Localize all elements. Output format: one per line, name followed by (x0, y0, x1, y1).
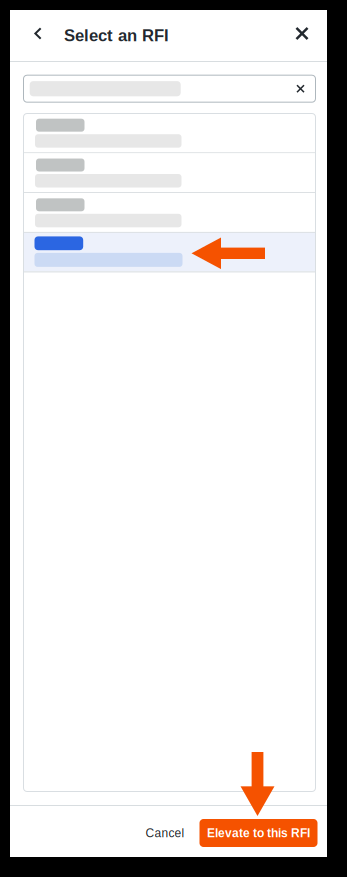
button[interactable] (23, 233, 315, 271)
button[interactable] (23, 113, 315, 152)
button[interactable]: Close (287, 18, 317, 48)
staticText: Cancel (145, 826, 184, 840)
staticText: Elevate to this RFI (207, 826, 310, 840)
staticText: Select an RFI (64, 26, 169, 45)
button[interactable]: Elevate to this RFI (199, 819, 317, 847)
button[interactable]: Clear search (290, 79, 310, 99)
button[interactable] (23, 153, 315, 192)
button[interactable] (23, 193, 315, 232)
button[interactable]: Cancel (133, 817, 199, 849)
button[interactable]: Back (24, 18, 52, 48)
